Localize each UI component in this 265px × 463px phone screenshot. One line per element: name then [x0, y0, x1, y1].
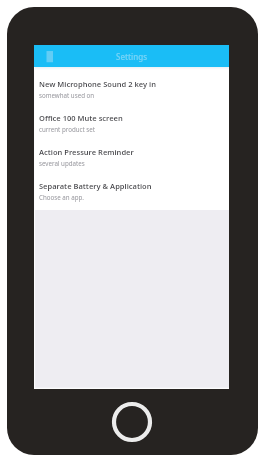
button[interactable]: Home	[111, 401, 153, 443]
button[interactable]: New Microphone Sound 2 key in	[34, 79, 229, 113]
staticText: Choose an app.	[39, 193, 84, 201]
button[interactable]: Action Pressure Reminder	[34, 147, 229, 181]
staticText: several updates	[39, 159, 85, 167]
staticText: current product set	[39, 125, 96, 133]
staticText: Settings	[116, 51, 148, 62]
staticText: Separate Battery & Application	[39, 181, 152, 191]
staticText: Action Pressure Reminder	[39, 147, 134, 157]
staticText: New Microphone Sound 2 key in	[39, 79, 156, 89]
staticText: somewhat used on	[39, 91, 95, 99]
button[interactable]: Navigate up	[45, 50, 55, 63]
button[interactable]: Office 100 Mute screen	[34, 113, 229, 147]
button[interactable]: Settings	[34, 45, 229, 67]
staticText: Office 100 Mute screen	[39, 113, 123, 123]
button[interactable]: Separate Battery & Application	[34, 181, 229, 210]
